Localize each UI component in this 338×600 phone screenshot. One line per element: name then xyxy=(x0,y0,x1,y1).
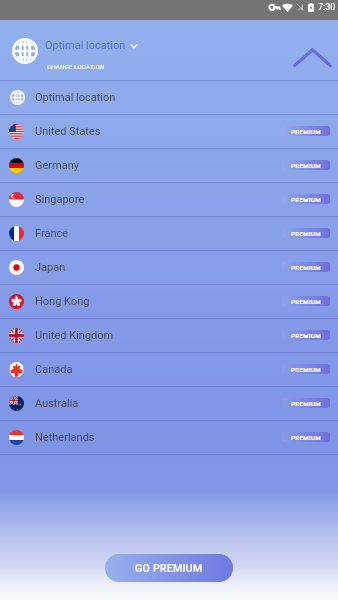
button[interactable]: Singapore xyxy=(0,182,338,216)
staticText: PREMIUM xyxy=(291,434,322,441)
staticText: Australia xyxy=(35,397,79,410)
button[interactable]: United States xyxy=(0,114,338,148)
button[interactable]: France xyxy=(0,216,338,250)
staticText: CHANGE LOCATION xyxy=(47,63,105,70)
staticText: PREMIUM xyxy=(291,400,322,407)
staticText: PREMIUM xyxy=(291,196,322,203)
staticText: United States xyxy=(35,125,101,138)
staticText: PREMIUM xyxy=(291,128,322,135)
staticText: United Kingdom xyxy=(35,329,114,342)
staticText: GO PREMIUM xyxy=(135,562,203,574)
staticText: PREMIUM xyxy=(291,366,322,373)
button[interactable]: Optimal location xyxy=(0,20,338,80)
button[interactable]: Canada xyxy=(0,352,338,386)
button[interactable]: Netherlands xyxy=(0,420,338,454)
staticText: PREMIUM xyxy=(291,298,322,305)
staticText: PREMIUM xyxy=(291,230,322,237)
staticText: 7:30 xyxy=(318,2,336,13)
staticText: PREMIUM xyxy=(291,162,322,169)
staticText: Optimal location xyxy=(35,91,116,104)
button[interactable]: United Kingdom xyxy=(0,318,338,352)
staticText: Japan xyxy=(35,261,66,274)
staticText: PREMIUM xyxy=(291,332,322,339)
button[interactable]: GO PREMIUM xyxy=(105,554,233,582)
button[interactable]: Germany xyxy=(0,148,338,182)
staticText: Germany xyxy=(35,159,79,172)
staticText: Singapore xyxy=(35,193,85,206)
staticText: Hong Kong xyxy=(35,295,90,308)
button[interactable]: Optimal location xyxy=(0,80,338,114)
staticText: Optimal location xyxy=(45,39,126,52)
button[interactable]: Collapse location list xyxy=(287,37,337,81)
button[interactable]: Japan xyxy=(0,250,338,284)
button[interactable]: Hong Kong xyxy=(0,284,338,318)
staticText: Canada xyxy=(35,363,73,376)
button[interactable]: Australia xyxy=(0,386,338,420)
staticText: Netherlands xyxy=(35,431,95,444)
staticText: PREMIUM xyxy=(291,264,322,271)
staticText: France xyxy=(35,227,69,240)
